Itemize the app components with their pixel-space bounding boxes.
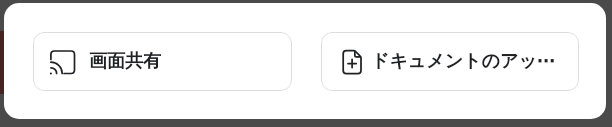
staticText: ドキュメントのアッ⋯ (371, 50, 555, 73)
staticText: 画面共有 (89, 50, 161, 73)
button[interactable]: 画面共有 (33, 32, 292, 91)
button[interactable]: ドキュメントのアッ⋯ (321, 32, 579, 91)
